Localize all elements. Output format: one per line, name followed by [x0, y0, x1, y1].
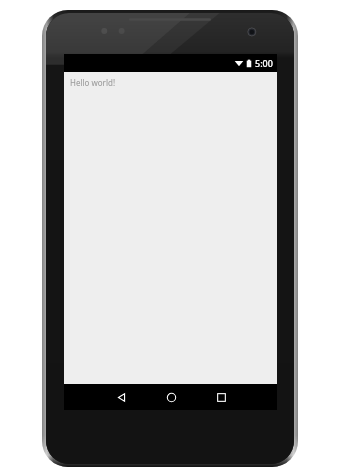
- other: Wi-Fi connected: [234, 58, 244, 68]
- button[interactable]: Back: [101, 384, 141, 410]
- staticText: 5:00: [255, 57, 273, 69]
- staticText: Hello world!: [70, 77, 116, 88]
- button[interactable]: Home: [151, 384, 191, 410]
- button[interactable]: Recent apps: [201, 384, 241, 410]
- other: Battery full: [246, 58, 252, 69]
